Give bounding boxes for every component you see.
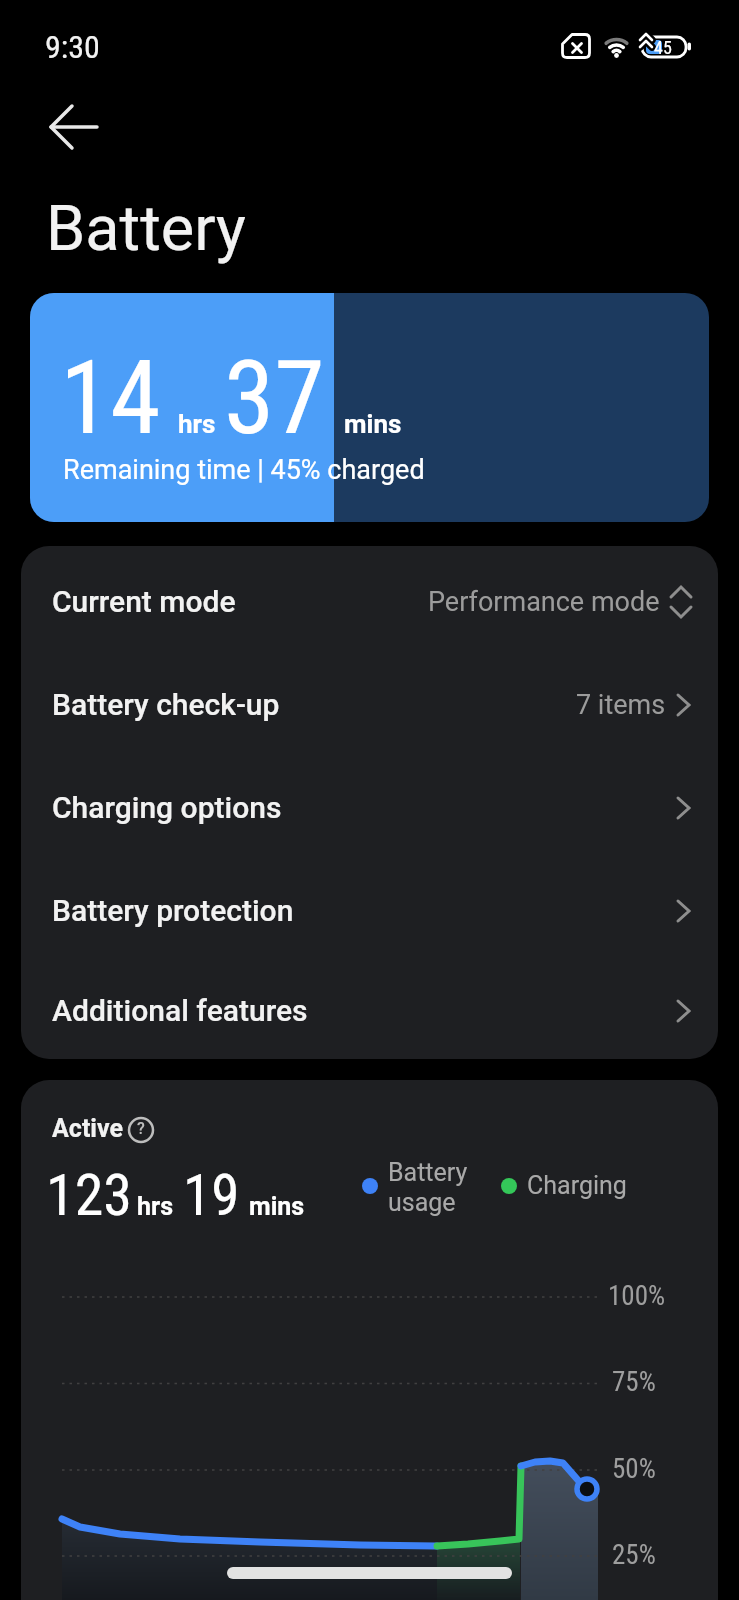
button[interactable]: Battery check-up <box>21 653 718 756</box>
staticText: mins <box>249 1192 305 1221</box>
staticText: Active <box>52 1114 123 1143</box>
staticText: 45 <box>654 37 672 58</box>
button[interactable]: Battery protection <box>21 859 718 962</box>
staticText: Battery <box>46 192 246 266</box>
button[interactable]: 14 <box>30 293 709 522</box>
button[interactable]: Current mode <box>21 550 718 653</box>
staticText: Additional features <box>52 993 308 1028</box>
button[interactable]: Additional features <box>21 962 718 1059</box>
staticText: Charging options <box>52 790 282 825</box>
staticText: 9:30 <box>45 28 100 66</box>
staticText: 75% <box>612 1366 656 1398</box>
staticText: hrs <box>137 1192 173 1221</box>
staticText: 37 <box>224 338 325 458</box>
staticText: Remaining time | 45% charged <box>63 454 425 486</box>
staticText: 50% <box>612 1453 656 1485</box>
staticText: 7 items <box>576 689 666 721</box>
staticText: 100% <box>608 1280 666 1312</box>
staticText: Battery protection <box>52 893 294 928</box>
staticText: Performance mode <box>428 586 660 618</box>
staticText: hrs <box>178 409 216 439</box>
staticText: Charging <box>527 1171 627 1200</box>
staticText: Battery check-up <box>52 687 280 722</box>
button[interactable] <box>34 94 112 160</box>
staticText: 123 <box>46 1161 132 1229</box>
button[interactable]: Charging options <box>21 756 718 859</box>
staticText: mins <box>344 409 402 439</box>
staticText: 19 <box>183 1162 240 1229</box>
staticText: ? <box>137 1119 145 1138</box>
staticText: Current mode <box>52 584 236 619</box>
staticText: 25% <box>612 1539 656 1571</box>
staticText: 14 <box>60 338 161 458</box>
staticText: Battery usage <box>388 1158 468 1217</box>
